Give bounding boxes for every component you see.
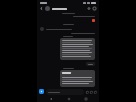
button[interactable]: Contact avatar xyxy=(45,6,50,11)
button[interactable] xyxy=(60,70,95,87)
button[interactable]: Sender avatar xyxy=(40,27,44,31)
button[interactable]: Attach file xyxy=(89,90,93,94)
button[interactable]: Emoji xyxy=(85,90,89,94)
button[interactable]: More options xyxy=(92,6,97,11)
button[interactable]: Add attachment xyxy=(39,89,44,94)
button[interactable] xyxy=(52,8,87,10)
button[interactable] xyxy=(60,38,95,60)
button[interactable]: Home xyxy=(65,96,72,102)
button[interactable]: Video call xyxy=(87,6,92,11)
button[interactable]: Recent apps xyxy=(82,96,89,102)
button[interactable]: Sticker xyxy=(92,19,95,22)
button[interactable]: Camera xyxy=(93,90,97,94)
button[interactable] xyxy=(86,62,95,66)
button[interactable] xyxy=(46,89,84,95)
button[interactable]: Back xyxy=(47,96,54,102)
button[interactable]: Back xyxy=(39,6,44,11)
